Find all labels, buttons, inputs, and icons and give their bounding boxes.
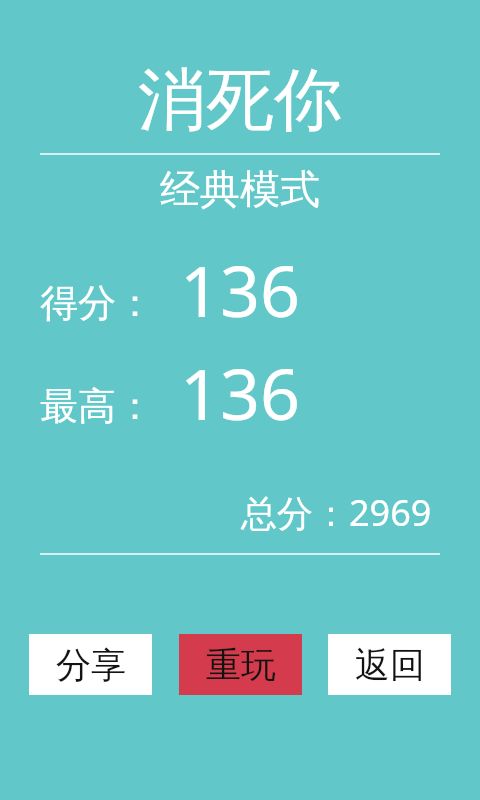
staticText: 得分：: [40, 279, 154, 327]
staticText: 分享: [56, 643, 126, 687]
staticText: 136: [180, 345, 301, 440]
staticText: 经典模式: [160, 164, 320, 214]
staticText: 136: [180, 242, 301, 337]
staticText: 总分：2969: [241, 488, 432, 537]
staticText: 最高：: [40, 382, 154, 430]
button[interactable]: 分享: [29, 634, 152, 695]
button[interactable]: 重玩: [179, 634, 302, 695]
staticText: 消死你: [138, 58, 342, 144]
button[interactable]: 返回: [328, 634, 451, 695]
staticText: 返回: [355, 643, 425, 687]
staticText: 重玩: [206, 643, 276, 687]
